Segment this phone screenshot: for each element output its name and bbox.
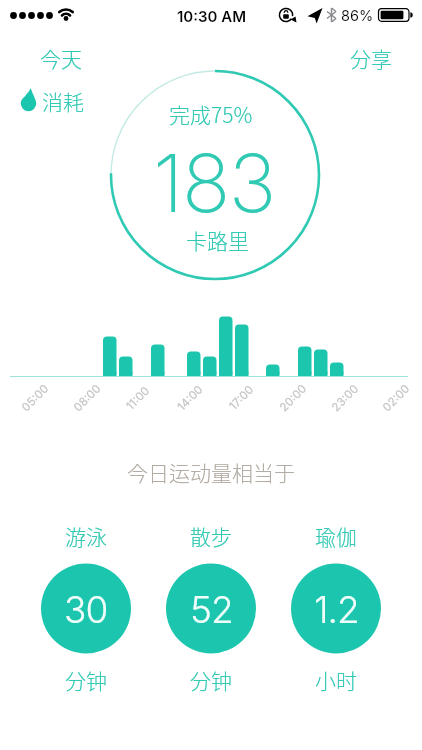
button[interactable]: 消耗 [33, 77, 93, 124]
staticText: 23:00 [329, 382, 361, 414]
staticText: 52 [190, 587, 233, 632]
staticText: 1.2 [314, 587, 359, 632]
staticText: 小时 [315, 665, 357, 695]
staticText: 瑜伽 [315, 521, 357, 551]
staticText: 183 [153, 134, 275, 231]
staticText: 17:00 [226, 382, 257, 413]
staticText: 分享 [350, 43, 392, 73]
staticText: 散步 [190, 521, 232, 551]
staticText: 今天 [40, 43, 82, 73]
button[interactable]: 分享 [331, 34, 411, 81]
staticText: 完成75% [169, 99, 253, 129]
staticText: 20:00 [277, 381, 310, 414]
staticText: 14:00 [174, 382, 205, 413]
staticText: 游泳 [65, 521, 107, 551]
staticText: 10:30 AM [177, 7, 246, 25]
staticText: 11:00 [123, 383, 153, 413]
staticText: 今日运动量相当于 [127, 457, 295, 487]
button[interactable]: 30 [41, 564, 131, 654]
button[interactable]: 52 [166, 564, 256, 654]
button[interactable]: 1.2 [291, 564, 381, 654]
staticText: 分钟 [190, 665, 232, 695]
staticText: 86% [341, 7, 374, 25]
staticText: 05:00 [19, 381, 52, 414]
button[interactable]: 今天 [21, 34, 101, 81]
staticText: 08:00 [71, 381, 104, 414]
staticText: 卡路里 [186, 225, 249, 255]
staticText: 分钟 [65, 665, 107, 695]
staticText: 02:00 [380, 381, 413, 414]
staticText: 消耗 [42, 86, 84, 116]
staticText: 30 [64, 587, 108, 632]
